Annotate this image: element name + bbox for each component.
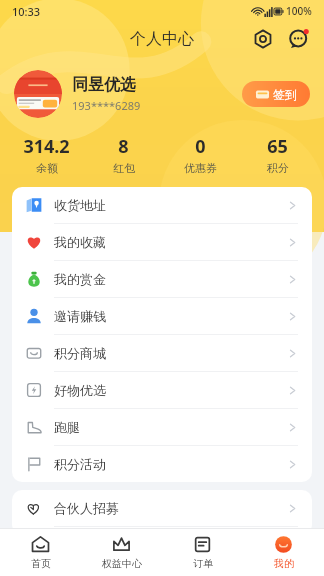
staticText: 10:33 <box>12 4 41 19</box>
button[interactable]: 权益中心 <box>81 529 162 576</box>
staticText: 红包 <box>113 161 135 175</box>
staticText: 314.2 <box>23 134 70 159</box>
button[interactable]: 314.2 <box>8 134 85 175</box>
button[interactable]: 0 <box>162 134 239 175</box>
staticText: 0 <box>195 134 206 159</box>
button[interactable]: 好物优选 <box>12 372 312 409</box>
staticText: 权益中心 <box>102 557 142 570</box>
button[interactable]: 我的赏金 <box>12 261 312 298</box>
staticText: 余额 <box>36 161 58 175</box>
button[interactable]: 65 <box>239 134 316 175</box>
button[interactable]: 积分活动 <box>12 446 312 482</box>
staticText: 我的 <box>274 557 294 570</box>
staticText: 跑腿 <box>54 419 80 435</box>
button[interactable]: 积分商城 <box>12 335 312 372</box>
button[interactable]: 签到 <box>242 81 310 107</box>
staticText: 积分商城 <box>54 345 106 361</box>
staticText: 8 <box>118 134 129 159</box>
button[interactable]: Messages <box>286 26 312 52</box>
button[interactable]: 合伙人招募 <box>12 490 312 527</box>
button[interactable]: Scan <box>250 26 276 52</box>
button[interactable]: 8 <box>85 134 162 175</box>
staticText: 65 <box>267 134 288 159</box>
staticText: 193****6289 <box>72 98 141 113</box>
staticText: 积分 <box>267 161 289 175</box>
staticText: 积分活动 <box>54 456 106 472</box>
button[interactable]: 我的收藏 <box>12 224 312 261</box>
staticText: 个人中心 <box>130 29 194 49</box>
staticText: 我的收藏 <box>54 234 106 250</box>
staticText: 优惠券 <box>184 161 217 175</box>
staticText: 订单 <box>193 557 213 570</box>
button[interactable]: 收货地址 <box>12 187 312 224</box>
staticText: 合伙人招募 <box>54 500 119 516</box>
staticText: 100% <box>286 4 312 18</box>
button[interactable]: 跑腿 <box>12 409 312 446</box>
staticText: 邀请赚钱 <box>54 308 106 324</box>
button[interactable] <box>14 70 62 118</box>
staticText: 签到 <box>273 87 297 102</box>
button[interactable]: 我的 <box>243 529 324 576</box>
staticText: 首页 <box>31 557 51 570</box>
staticText: 我的赏金 <box>54 271 106 287</box>
button[interactable]: 邀请赚钱 <box>12 298 312 335</box>
button[interactable]: 首页 <box>0 529 81 576</box>
staticText: 收货地址 <box>54 197 106 213</box>
button[interactable]: 订单 <box>162 529 243 576</box>
staticText: 同昱优选 <box>72 75 136 95</box>
staticText: 好物优选 <box>54 382 106 398</box>
